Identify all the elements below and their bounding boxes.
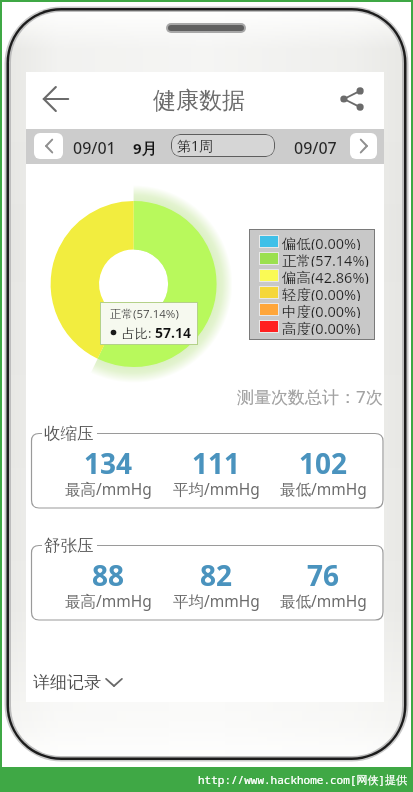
staticText: 76 [307, 556, 340, 594]
staticText: 正常(57.14%) [110, 306, 179, 322]
staticText: 09/01 [73, 137, 116, 159]
button[interactable]: Share [329, 76, 374, 121]
staticText: http://www.hackhome.com[网侠]提供 [198, 772, 407, 787]
staticText: 中度(0.00%) [282, 301, 361, 318]
staticText: 详细记录 [33, 672, 101, 693]
staticText: 高度(0.00%) [282, 318, 361, 335]
staticText: 健康数据 [153, 86, 245, 115]
button[interactable]: Back [32, 75, 79, 122]
staticText: 82 [200, 556, 233, 594]
staticText: 正常(57.14%) [282, 250, 369, 267]
staticText: 88 [92, 556, 125, 594]
staticText: 57.14 [155, 323, 191, 342]
staticText: 舒张压 [44, 535, 94, 556]
staticText: 占比: [122, 324, 155, 342]
button[interactable]: 详细记录 [26, 662, 384, 702]
staticText: 偏低(0.00%) [282, 233, 361, 250]
staticText: 最高/mmHg [65, 590, 152, 611]
button[interactable]: 第1周 [171, 134, 275, 157]
button[interactable]: Next week [350, 133, 377, 159]
staticText: 偏高(42.86%) [282, 267, 369, 284]
staticText: 最高/mmHg [65, 478, 152, 499]
staticText: 9月 [133, 138, 157, 158]
staticText: 134 [84, 444, 133, 482]
staticText: 收缩压 [44, 423, 94, 444]
staticText: 测量次数总计：7次 [237, 385, 383, 408]
staticText: 平均/mmHg [173, 478, 260, 499]
staticText: 最低/mmHg [280, 478, 367, 499]
staticText: 第1周 [177, 136, 214, 155]
staticText: 平均/mmHg [173, 590, 260, 611]
staticText: 轻度(0.00%) [282, 284, 361, 301]
staticText: 102 [299, 444, 348, 482]
staticText: 09/07 [294, 137, 337, 159]
button[interactable]: Previous week [34, 133, 63, 159]
staticText: 111 [192, 444, 241, 482]
staticText: 最低/mmHg [280, 590, 367, 611]
